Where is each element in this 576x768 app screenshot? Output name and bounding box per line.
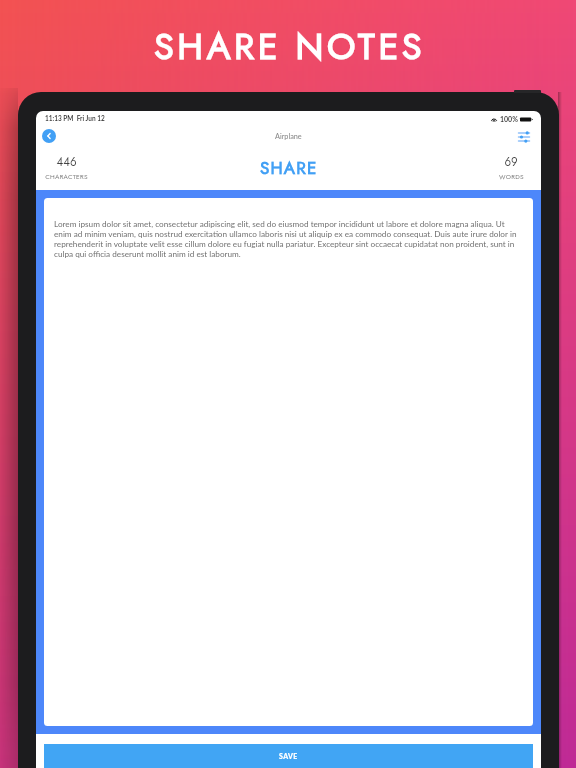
button[interactable]: Back [42,129,56,143]
staticText: SHARE [260,156,318,181]
staticText: 100% [500,115,518,123]
staticText: SAVE [279,752,298,760]
staticText: SHARE NOTES [154,20,426,72]
staticText: WORDS [499,172,524,182]
button[interactable]: Settings [516,130,532,144]
button[interactable]: Lorem ipsum dolor sit amet, consectetur … [44,198,533,726]
staticText: Lorem ipsum dolor sit amet, consectetur … [54,219,524,259]
staticText: 69 [504,154,518,171]
staticText: CHARACTERS [45,172,88,182]
staticText: Airplane [275,132,302,141]
button[interactable]: SAVE [44,744,533,768]
staticText: 11:13 PM Fri Jun 12 [45,115,105,123]
staticText: 446 [56,154,77,171]
